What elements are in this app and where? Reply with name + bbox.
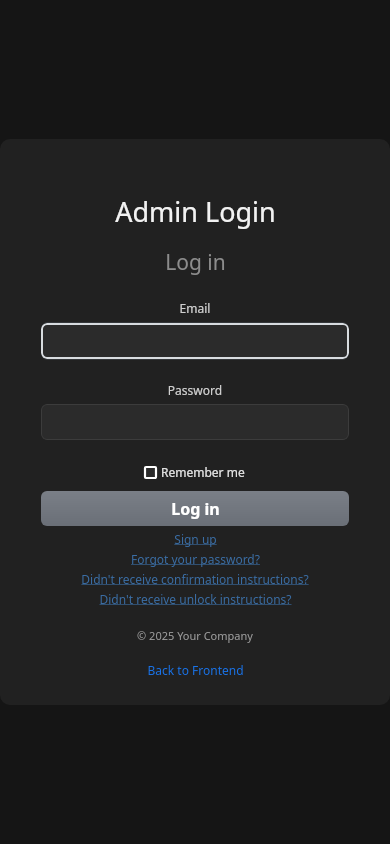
staticText: Didn't receive confirmation instructions… bbox=[81, 571, 309, 587]
button[interactable]: Sign up bbox=[0, 531, 390, 547]
staticText: Didn't receive unlock instructions? bbox=[99, 591, 292, 607]
button[interactable]: Forgot your password? bbox=[0, 551, 390, 567]
button[interactable]: Password input field bbox=[41, 404, 349, 440]
staticText: Log in bbox=[165, 248, 226, 277]
staticText: © 2025 Your Company bbox=[0, 628, 390, 643]
staticText: Remember me bbox=[161, 464, 245, 480]
button[interactable]: Didn't receive unlock instructions? bbox=[0, 591, 390, 607]
button[interactable]: Log in bbox=[41, 491, 349, 526]
staticText: Admin Login bbox=[115, 193, 276, 230]
button[interactable]: Back to Frontend bbox=[0, 662, 390, 678]
button[interactable]: Email input field bbox=[41, 323, 349, 359]
staticText: Email bbox=[41, 300, 349, 316]
staticText: Forgot your password? bbox=[131, 551, 260, 567]
staticText: Password bbox=[41, 382, 349, 398]
staticText: Sign up bbox=[174, 531, 217, 547]
button[interactable]: Remember me bbox=[141, 462, 249, 482]
staticText: Log in bbox=[171, 498, 220, 520]
staticText: Back to Frontend bbox=[147, 662, 244, 678]
button[interactable]: Didn't receive confirmation instructions… bbox=[0, 571, 390, 587]
